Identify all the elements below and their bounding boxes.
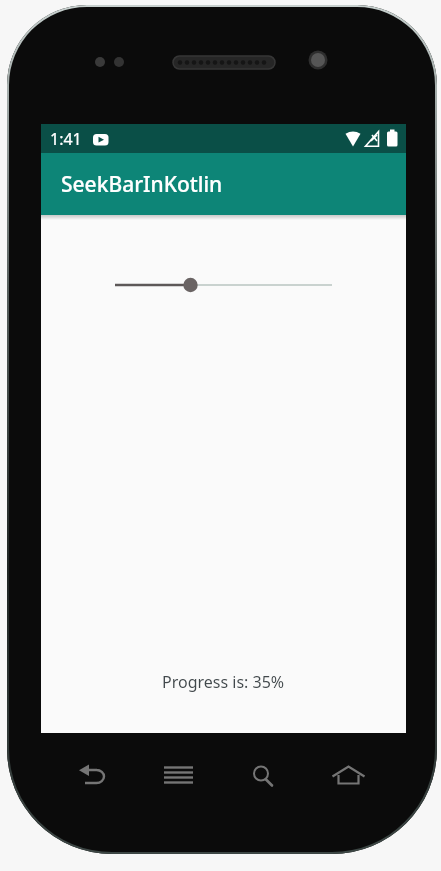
staticText: SeekBarInKotlin [61, 170, 223, 199]
button[interactable] [74, 758, 114, 794]
button[interactable] [158, 758, 198, 794]
button[interactable] [328, 758, 368, 794]
staticText: Progress is: 35% [162, 671, 285, 693]
button[interactable] [107, 265, 340, 305]
button[interactable] [244, 758, 284, 794]
staticText: 1:41 [50, 128, 82, 150]
